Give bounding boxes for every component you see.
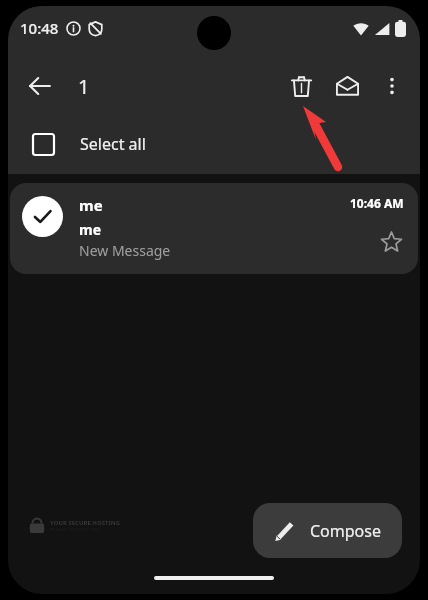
button[interactable]: Select all [8,114,420,174]
button[interactable]: Back [18,64,62,108]
button[interactable]: Star [378,229,404,255]
staticText: Compose [310,520,381,542]
button[interactable]: Compose [253,503,402,558]
staticText: Select all [80,133,146,155]
button[interactable]: More options [370,64,414,108]
staticText: 1 [78,73,90,100]
button[interactable]: Mark as read [324,63,370,109]
staticText: YOUR SECURE HOSTING [50,519,120,527]
button[interactable]: Delete [278,63,324,109]
staticText: 10:46 AM [350,195,404,211]
staticText: me [79,220,102,239]
staticText: 10:48 [20,18,59,38]
button[interactable]: Selected [10,183,418,274]
other: Selected [22,196,63,237]
staticText: me [79,195,103,215]
staticText: New Message [79,241,171,260]
